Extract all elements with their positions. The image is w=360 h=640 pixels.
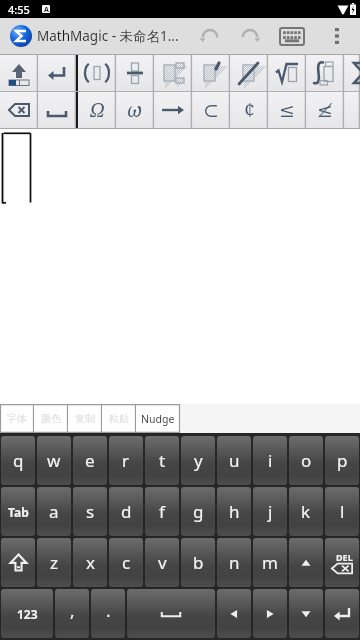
staticText: l	[340, 500, 345, 523]
button[interactable]: l	[325, 487, 359, 536]
button[interactable]: 字体	[0, 404, 34, 433]
staticText: q	[13, 449, 24, 472]
button[interactable]	[289, 538, 323, 587]
button[interactable]: 复制	[68, 404, 102, 433]
button[interactable]	[289, 589, 323, 638]
button[interactable]: tool05	[192, 55, 230, 91]
button[interactable]: 粘贴	[102, 404, 136, 433]
staticText: x	[86, 551, 95, 574]
button[interactable]	[127, 589, 215, 638]
button[interactable]: Tab	[1, 487, 35, 536]
button[interactable]: i	[253, 436, 287, 485]
staticText: ≰	[317, 99, 333, 121]
staticText: i	[268, 449, 273, 472]
staticText: c	[122, 551, 131, 574]
button[interactable]: b	[181, 538, 215, 587]
button[interactable]: f	[145, 487, 179, 536]
staticText: z	[50, 551, 58, 574]
button[interactable]: w	[37, 436, 71, 485]
button[interactable]: c	[109, 538, 143, 587]
staticText: a	[49, 500, 59, 523]
button[interactable]	[1, 538, 35, 587]
staticText: p	[337, 449, 348, 472]
staticText: k	[301, 500, 311, 523]
button[interactable]	[217, 589, 251, 638]
staticText: 123	[17, 606, 38, 622]
staticText: y	[194, 449, 203, 472]
staticText: g	[193, 500, 204, 523]
button[interactable]: tool07	[268, 55, 306, 91]
button[interactable]: tool09	[344, 55, 360, 91]
staticText: Ω	[90, 97, 105, 123]
button[interactable]: 颜色	[34, 404, 68, 433]
staticText: Nudge	[141, 412, 175, 426]
staticText: v	[158, 551, 167, 574]
button[interactable]: m	[253, 538, 287, 587]
button[interactable]: tool06	[230, 55, 268, 91]
button[interactable]: t	[145, 436, 179, 485]
staticText: o	[301, 449, 312, 472]
staticText: j	[268, 500, 273, 523]
button[interactable]: .	[91, 589, 125, 638]
staticText: n	[229, 551, 240, 574]
button[interactable]: tool11	[38, 92, 76, 128]
button[interactable]: e	[73, 436, 107, 485]
staticText: u	[229, 449, 240, 472]
button[interactable]: Nudge	[136, 404, 180, 433]
button[interactable]: p	[325, 436, 359, 485]
button[interactable]: j	[253, 487, 287, 536]
button[interactable]: x	[73, 538, 107, 587]
button[interactable]: tool17	[268, 92, 306, 128]
button[interactable]: n	[217, 538, 251, 587]
button[interactable]: ,	[55, 589, 89, 638]
staticText: ω	[127, 97, 143, 123]
button[interactable]: tool16	[230, 92, 268, 128]
button[interactable]: g	[181, 487, 215, 536]
button[interactable]: tool03	[116, 55, 154, 91]
button[interactable]: tool13	[116, 92, 154, 128]
staticText: 4:55	[8, 2, 30, 17]
button[interactable]: Redo	[230, 18, 270, 54]
staticText: .	[106, 599, 111, 622]
button[interactable]: Keyboard	[270, 18, 314, 54]
button[interactable]: tool02	[78, 55, 116, 91]
button[interactable]: v	[145, 538, 179, 587]
staticText: d	[121, 500, 132, 523]
button[interactable]: tool15	[192, 92, 230, 128]
button[interactable]: q	[1, 436, 35, 485]
button[interactable]: tool10	[0, 92, 38, 128]
button[interactable]: tool18	[306, 92, 344, 128]
staticText: ⊂	[203, 99, 219, 121]
staticText: 字体	[7, 412, 27, 425]
button[interactable]	[325, 589, 359, 638]
button[interactable]: tool08	[306, 55, 344, 91]
button[interactable]: More options	[314, 18, 360, 54]
button[interactable]: y	[181, 436, 215, 485]
button[interactable]: DEL	[325, 538, 359, 587]
staticText: w	[47, 449, 61, 472]
staticText: h	[229, 500, 240, 523]
button[interactable]: d	[109, 487, 143, 536]
button[interactable]: Undo	[190, 18, 230, 54]
button[interactable]: h	[217, 487, 251, 536]
button[interactable]: u	[217, 436, 251, 485]
button[interactable]: tool14	[154, 92, 192, 128]
button[interactable]: o	[289, 436, 323, 485]
button[interactable]: a	[37, 487, 71, 536]
button[interactable]: k	[289, 487, 323, 536]
button[interactable]: s	[73, 487, 107, 536]
staticText: e	[85, 449, 95, 472]
button[interactable]: tool19	[344, 92, 360, 128]
button[interactable]: 123	[1, 589, 53, 638]
staticText: r	[122, 449, 130, 472]
staticText: f	[159, 500, 165, 523]
staticText: 复制	[75, 412, 95, 425]
staticText: b	[193, 551, 204, 574]
button[interactable]: tool01	[38, 55, 76, 91]
button[interactable]: tool12	[78, 92, 116, 128]
button[interactable]: r	[109, 436, 143, 485]
button[interactable]: tool04	[154, 55, 192, 91]
button[interactable]: tool00	[0, 55, 38, 91]
button[interactable]	[253, 589, 287, 638]
button[interactable]: z	[37, 538, 71, 587]
